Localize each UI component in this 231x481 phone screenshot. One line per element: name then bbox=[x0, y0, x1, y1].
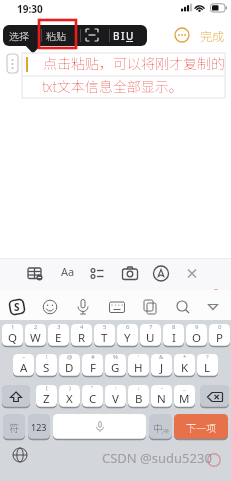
button[interactable]: 3 bbox=[48, 324, 69, 347]
button[interactable]: * bbox=[174, 354, 195, 377]
button[interactable] bbox=[10, 445, 30, 465]
staticText: 0 bbox=[218, 323, 222, 331]
staticText: : bbox=[115, 384, 117, 392]
staticText: F bbox=[90, 360, 96, 376]
staticText: - bbox=[161, 384, 163, 392]
button[interactable]: - bbox=[151, 385, 172, 408]
staticText: G bbox=[111, 360, 120, 376]
staticText: H bbox=[134, 360, 143, 376]
button[interactable] bbox=[200, 385, 229, 408]
button[interactable]: 0 bbox=[209, 324, 230, 347]
staticText: W bbox=[30, 330, 41, 346]
staticText: N bbox=[157, 391, 166, 407]
staticText: # bbox=[91, 353, 95, 361]
staticText: " bbox=[91, 384, 94, 392]
staticText: D bbox=[65, 360, 74, 376]
staticText: ) bbox=[69, 384, 71, 392]
staticText: C bbox=[89, 391, 97, 407]
button[interactable]: ) bbox=[59, 385, 80, 408]
staticText: 6 bbox=[126, 323, 130, 331]
button[interactable]: % bbox=[105, 354, 126, 377]
button[interactable]: 7 bbox=[140, 324, 161, 347]
button[interactable]: _ bbox=[174, 385, 195, 408]
staticText: 9 bbox=[195, 323, 199, 331]
staticText: L bbox=[204, 360, 211, 376]
button[interactable]: 完成 bbox=[197, 26, 229, 44]
button[interactable] bbox=[173, 26, 191, 44]
staticText: S bbox=[43, 360, 50, 376]
button[interactable]: 5 bbox=[94, 324, 115, 347]
button[interactable]: : bbox=[105, 385, 126, 408]
staticText: 8 bbox=[172, 323, 176, 331]
button[interactable]: 中 bbox=[149, 414, 172, 440]
button[interactable] bbox=[105, 295, 129, 319]
staticText: X bbox=[66, 391, 73, 407]
button[interactable]: 123 bbox=[28, 414, 50, 440]
button[interactable]: 8 bbox=[163, 324, 184, 347]
button[interactable] bbox=[2, 385, 30, 408]
button[interactable]: ! bbox=[36, 354, 57, 377]
button[interactable]: ; bbox=[128, 385, 149, 408]
staticText: 选择 bbox=[9, 28, 29, 42]
button[interactable]: Aa bbox=[61, 264, 79, 282]
button[interactable] bbox=[110, 25, 147, 46]
staticText: I bbox=[172, 330, 176, 346]
button[interactable]: 符 bbox=[3, 414, 25, 440]
button[interactable] bbox=[6, 296, 28, 318]
staticText: P bbox=[216, 330, 223, 346]
staticText: 5 bbox=[103, 323, 107, 331]
button[interactable] bbox=[81, 25, 109, 46]
staticText: 粘贴 bbox=[46, 28, 66, 42]
staticText: ( bbox=[46, 384, 48, 392]
button[interactable]: ' bbox=[128, 354, 149, 377]
staticText: * bbox=[183, 353, 187, 361]
staticText: 中 bbox=[153, 420, 163, 434]
staticText: & bbox=[159, 353, 164, 361]
staticText: Q bbox=[8, 330, 17, 346]
staticText: CSDN @sudu5230 bbox=[102, 449, 212, 467]
button[interactable] bbox=[3, 25, 41, 46]
button[interactable] bbox=[86, 261, 110, 285]
button[interactable]: 2 bbox=[25, 324, 46, 347]
staticText: 完成 bbox=[200, 27, 225, 44]
button[interactable]: ( bbox=[36, 385, 57, 408]
staticText: 下一项 bbox=[186, 420, 216, 434]
button[interactable] bbox=[23, 261, 47, 285]
button[interactable] bbox=[118, 261, 142, 285]
staticText: B bbox=[135, 391, 143, 407]
staticText: 1 bbox=[11, 323, 15, 331]
button[interactable] bbox=[149, 261, 173, 285]
button[interactable] bbox=[138, 295, 162, 319]
button[interactable]: " bbox=[82, 385, 103, 408]
button[interactable] bbox=[53, 414, 146, 440]
staticText: @ bbox=[67, 353, 73, 361]
button[interactable]: @ bbox=[59, 354, 80, 377]
staticText: V bbox=[112, 391, 119, 407]
button[interactable]: 9 bbox=[186, 324, 207, 347]
button[interactable] bbox=[180, 261, 204, 285]
staticText: O bbox=[192, 330, 201, 346]
button[interactable] bbox=[71, 295, 95, 319]
button[interactable] bbox=[171, 295, 195, 319]
button[interactable]: 1 bbox=[2, 324, 23, 347]
staticText: txt文本信息全部显示。 bbox=[42, 76, 183, 96]
button[interactable] bbox=[38, 295, 62, 319]
button[interactable]: 4 bbox=[71, 324, 92, 347]
staticText: _ bbox=[183, 384, 186, 392]
staticText: ' bbox=[138, 353, 140, 361]
button[interactable] bbox=[42, 25, 80, 46]
staticText: % bbox=[113, 353, 118, 361]
staticText: BIU bbox=[113, 29, 135, 43]
button[interactable]: 6 bbox=[117, 324, 138, 347]
button[interactable]: ~ bbox=[13, 354, 34, 377]
staticText: R bbox=[78, 330, 86, 346]
button[interactable]: & bbox=[151, 354, 172, 377]
button[interactable] bbox=[201, 295, 225, 319]
staticText: ? bbox=[206, 353, 209, 361]
staticText: 4 bbox=[80, 323, 84, 331]
button[interactable]: ? bbox=[197, 354, 218, 377]
staticText: T bbox=[101, 330, 108, 346]
button[interactable]: # bbox=[82, 354, 103, 377]
button[interactable]: 下一项 bbox=[174, 414, 228, 440]
staticText: 19:30 bbox=[17, 2, 43, 16]
